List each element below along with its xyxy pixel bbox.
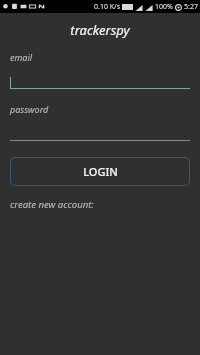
button[interactable]	[10, 127, 190, 141]
staticText: email	[10, 51, 33, 63]
staticText: create new account:	[10, 198, 94, 211]
staticText: 100%	[155, 2, 173, 12]
staticText: 5:27	[184, 2, 198, 12]
staticText: 0.10 K/s	[94, 2, 120, 12]
button[interactable]: LOGIN	[10, 157, 190, 186]
staticText: password	[10, 103, 49, 115]
staticText: LOGIN	[83, 164, 118, 179]
button[interactable]	[10, 75, 190, 89]
staticText: trackerspy	[70, 21, 130, 39]
button[interactable]: create new account:	[10, 198, 94, 211]
